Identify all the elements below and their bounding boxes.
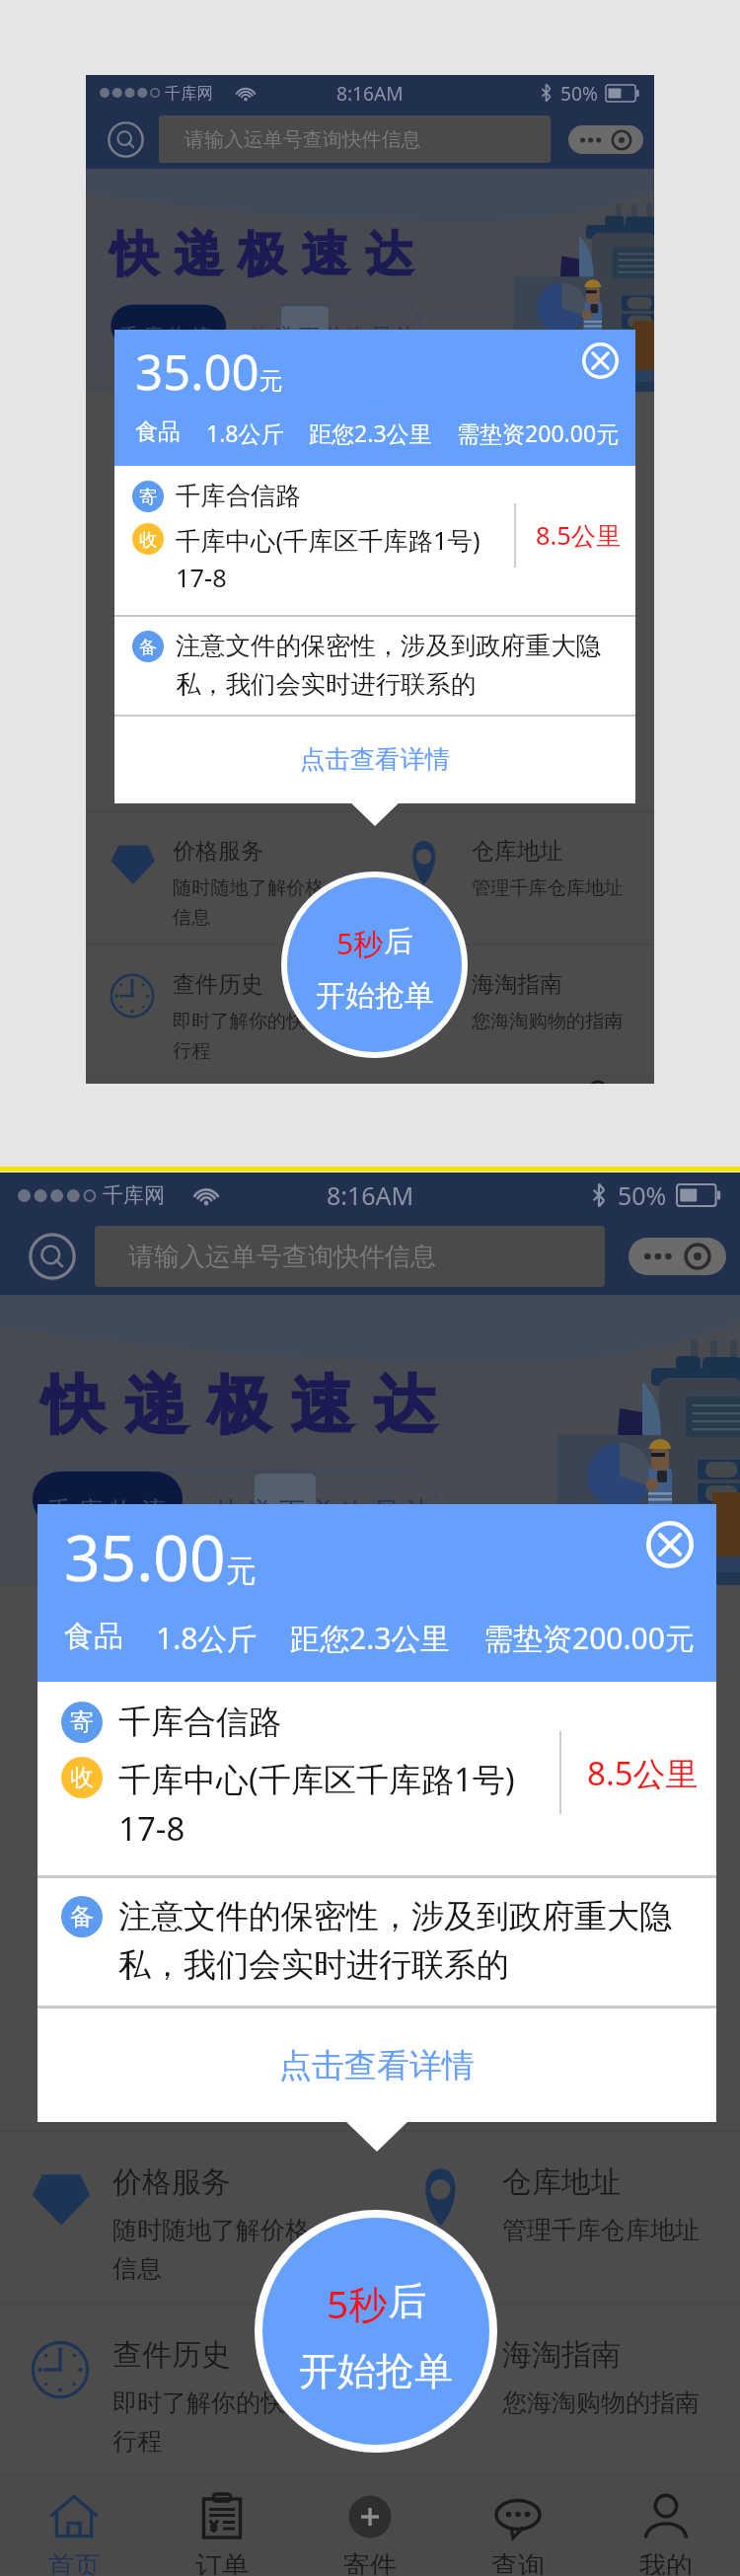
staticText: 距您2.3公里	[309, 417, 432, 448]
button[interactable]: More options	[568, 125, 643, 154]
button[interactable]: 价格服务	[0, 2132, 370, 2303]
button[interactable]: 查件历史	[86, 946, 370, 1075]
button[interactable]: 寄件	[296, 2475, 444, 2575]
staticText: 寄件	[343, 2549, 397, 2575]
staticText: 8:16AM	[336, 80, 404, 106]
staticText: 您海淘购物的指南	[472, 1010, 624, 1033]
staticText: 仓库地址	[472, 837, 563, 866]
button[interactable]: 查询	[444, 2475, 592, 2575]
staticText: 点击查看详情	[300, 744, 451, 776]
staticText: 价格服务	[112, 2163, 231, 2201]
staticText: 海淘指南	[502, 2336, 621, 2374]
button[interactable]: 我的	[592, 2475, 740, 2575]
staticText: 1.8公斤	[156, 1618, 258, 1658]
button[interactable]: 价格服务	[86, 812, 370, 944]
staticText: 快递下单次日达	[213, 1495, 434, 1528]
staticText: 距您2.3公里	[290, 1618, 451, 1658]
button[interactable]: Search	[108, 121, 144, 158]
staticText: 开始抢单	[316, 977, 434, 1015]
staticText: 即时了解你的快 行程	[173, 1010, 306, 1063]
staticText: 我的	[639, 2549, 693, 2575]
staticText: 8:16AM	[327, 1178, 414, 1212]
staticText: 您海淘购物的指南	[502, 2387, 700, 2418]
staticText: 收	[70, 1763, 94, 1792]
staticText: 50%	[560, 80, 598, 106]
staticText: 请输入运单号查询快件信息	[128, 1241, 436, 1273]
staticText: 千库物流	[119, 324, 217, 348]
staticText: 食品	[64, 1618, 123, 1655]
button[interactable]: 仓库地址	[370, 2132, 740, 2303]
staticText: 寄	[70, 1707, 94, 1737]
staticText: 后	[384, 923, 413, 960]
button[interactable]: 点击查看详情	[114, 717, 635, 803]
staticText: 35.00	[135, 338, 259, 404]
staticText: 备	[70, 1902, 94, 1932]
staticText: 千库网	[165, 83, 213, 103]
staticText: 查件历史	[173, 970, 264, 999]
staticText: 随时随地了解价格 信息	[112, 2215, 310, 2285]
staticText: 仓库地址	[502, 2163, 621, 2201]
staticText: 5秒	[336, 923, 384, 963]
staticText: 千库合信路	[176, 481, 301, 512]
staticText: 管理千库仓库地址	[502, 2215, 700, 2245]
staticText: 后	[388, 2277, 426, 2325]
staticText: 食品	[135, 417, 182, 446]
staticText: 随时随地了解价格 信息	[173, 876, 325, 930]
button[interactable]: 海淘指南	[370, 2305, 740, 2473]
staticText: 查询	[491, 2549, 545, 2575]
button[interactable]: 查件历史	[0, 2305, 370, 2473]
staticText: 注意文件的保密性，涉及到政府重大隐私，我们会实时进行联系的	[176, 631, 618, 700]
staticText: 快递极速达	[32, 1366, 446, 1444]
staticText: 50%	[618, 1178, 667, 1212]
staticText: 点击查看详情	[279, 2045, 475, 2086]
button[interactable]: More options	[629, 1238, 726, 1275]
staticText: 收	[139, 528, 158, 551]
button[interactable]: Close	[646, 1521, 694, 1568]
staticText: 快递下单次日达	[251, 324, 420, 348]
staticText: 注意文件的保密性，涉及到政府重大隐私，我们会实时进行联系的	[118, 1896, 693, 1986]
staticText: 订单	[195, 2549, 249, 2575]
staticText: 千库中心(千库区千库路1号) 17-8	[176, 523, 481, 594]
staticText: 快递极速达	[111, 224, 429, 284]
staticText: 元	[226, 1552, 257, 1590]
staticText: 千库合信路	[118, 1702, 281, 1743]
button[interactable]: 仓库地址	[370, 812, 654, 944]
staticText: 管理千库仓库地址	[472, 876, 624, 900]
button[interactable]: 请输入运单号查询快件信息	[95, 1226, 605, 1287]
staticText: 需垫资200.00元	[483, 1618, 695, 1658]
staticText: 1.8公斤	[206, 417, 284, 448]
staticText: 千库网	[103, 1182, 165, 1208]
button[interactable]: 请输入运单号查询快件信息	[159, 115, 551, 163]
staticText: 开始抢单	[299, 2347, 453, 2395]
staticText: 首页	[47, 2549, 101, 2575]
staticText: 元	[259, 366, 283, 396]
staticText: 5秒	[327, 2277, 388, 2329]
staticText: 查件历史	[112, 2336, 231, 2374]
staticText: 即时了解你的快 行程	[112, 2387, 285, 2458]
button[interactable]: 5秒	[262, 2218, 489, 2445]
staticText: 需垫资200.00元	[457, 417, 620, 448]
staticText: 8.5公里	[536, 518, 622, 553]
button[interactable]: Search	[29, 1233, 76, 1280]
button[interactable]: Close	[582, 342, 619, 379]
button[interactable]: 我的	[541, 1077, 654, 1084]
staticText: 千库中心(千库区千库路1号) 17-8	[118, 1757, 515, 1850]
button[interactable]: 首页	[0, 2475, 148, 2575]
button[interactable]: 海淘指南	[370, 946, 654, 1075]
staticText: 8.5公里	[587, 1751, 699, 1795]
staticText: 备	[139, 636, 158, 658]
button[interactable]: 订单	[148, 2475, 296, 2575]
button[interactable]: 点击查看详情	[37, 2008, 716, 2122]
staticText: 千库物流	[43, 1495, 170, 1528]
staticText: 请输入运单号查询快件信息	[185, 127, 421, 152]
staticText: 价格服务	[173, 837, 264, 866]
staticText: 寄	[139, 486, 158, 508]
button[interactable]: 5秒	[287, 877, 462, 1052]
staticText: 35.00	[64, 1514, 226, 1600]
staticText: 海淘指南	[472, 970, 563, 999]
